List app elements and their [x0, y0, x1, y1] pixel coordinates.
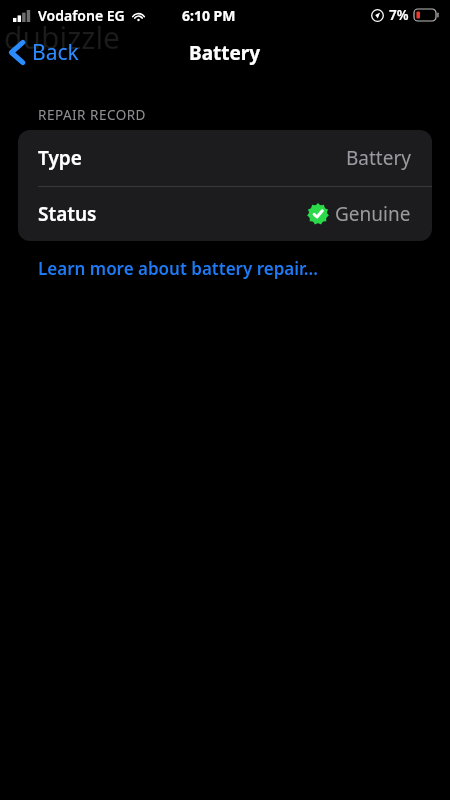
- button[interactable]: Learn more about battery repair...: [28, 253, 328, 284]
- staticText: Back: [32, 38, 79, 67]
- staticText: Status: [38, 201, 97, 227]
- other: Genuine verified: [307, 203, 329, 225]
- staticText: Genuine: [335, 201, 411, 227]
- other: Back: [10, 41, 24, 64]
- staticText: REPAIR RECORD: [38, 106, 146, 124]
- staticText: Battery: [346, 145, 411, 171]
- staticText: Type: [38, 145, 82, 171]
- button[interactable]: Back: [0, 34, 89, 71]
- staticText: Vodafone EG: [38, 6, 125, 25]
- staticText: 6:10 PM: [182, 6, 236, 25]
- staticText: dubizzle: [4, 17, 121, 58]
- button[interactable]: Type: [18, 130, 432, 186]
- button[interactable]: Status: [18, 187, 432, 241]
- staticText: Learn more about battery repair...: [38, 257, 318, 280]
- staticText: 7%: [389, 6, 409, 24]
- staticText: Battery: [189, 40, 261, 66]
